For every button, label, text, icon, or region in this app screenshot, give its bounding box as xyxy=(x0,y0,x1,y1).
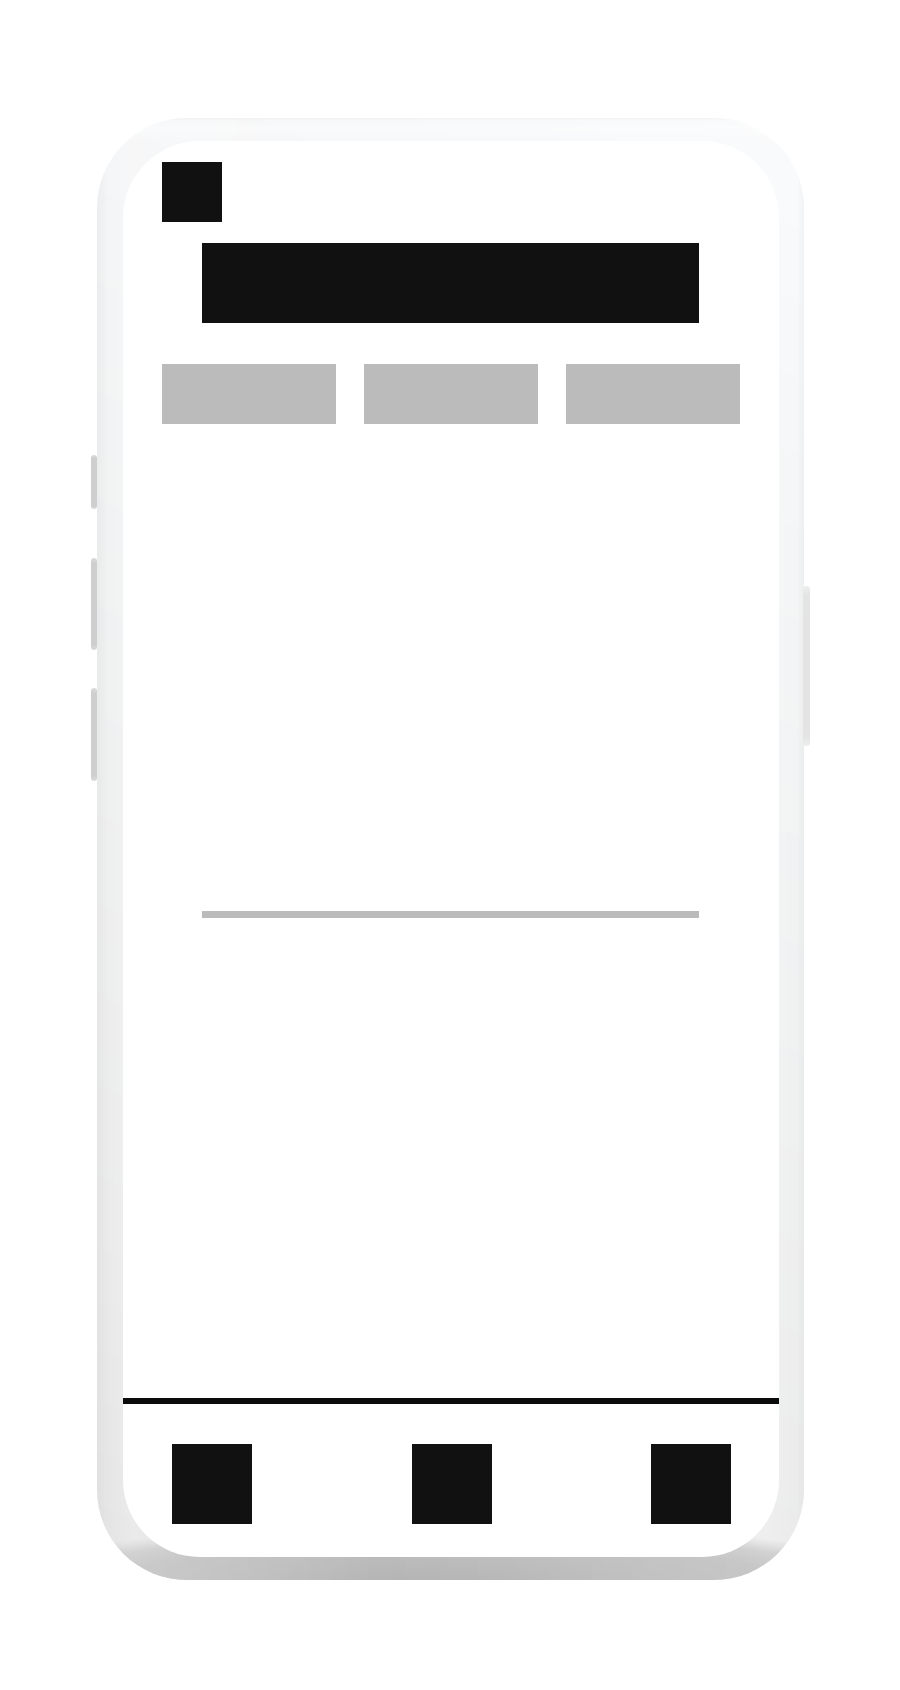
button[interactable]: Profile xyxy=(651,1404,731,1557)
button[interactable]: Search xyxy=(412,1404,492,1557)
button[interactable]: Home xyxy=(172,1404,252,1557)
